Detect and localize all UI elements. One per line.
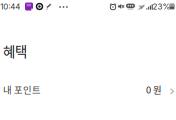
staticText: 0 원 — [146, 83, 162, 96]
staticText: 내 포인트 — [3, 83, 41, 96]
button[interactable]: 내 포인트 — [0, 83, 176, 96]
staticText: 10:44 — [0, 2, 20, 11]
staticText: 혜택 — [3, 41, 27, 61]
staticText: 23% — [152, 2, 170, 11]
